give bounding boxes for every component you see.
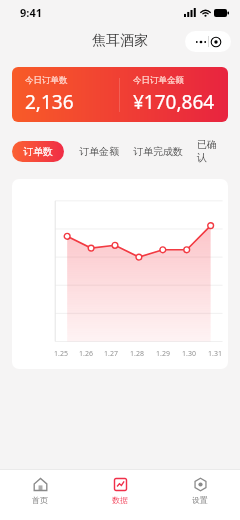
button[interactable]: Mini program menu xyxy=(185,31,231,52)
button[interactable]: 今日订单数 xyxy=(12,67,228,122)
staticText: 首页 xyxy=(32,495,48,505)
button[interactable]: 设置 xyxy=(160,470,240,520)
button[interactable]: 已确认 xyxy=(190,134,228,168)
staticText: 设置 xyxy=(192,495,208,505)
staticText: 2,136 xyxy=(25,89,74,115)
staticText: 1.27 xyxy=(104,349,118,359)
button[interactable]: 订单数 xyxy=(12,141,64,162)
staticText: 订单金额 xyxy=(79,145,119,158)
staticText: 1.30 xyxy=(182,349,196,359)
staticText: 今日订单数 xyxy=(25,75,68,86)
staticText: 订单完成数 xyxy=(133,145,183,158)
button[interactable]: 数据 xyxy=(80,470,160,520)
button[interactable]: 首页 xyxy=(0,470,80,520)
staticText: ¥170,864 xyxy=(133,89,215,115)
staticText: 已确认 xyxy=(197,138,221,164)
staticText: 焦耳酒家 xyxy=(92,32,148,50)
staticText: 1.26 xyxy=(79,349,93,359)
staticText: 1.28 xyxy=(130,349,144,359)
staticText: 订单数 xyxy=(23,145,53,158)
button[interactable]: 订单完成数 xyxy=(126,141,190,162)
staticText: 1.25 xyxy=(54,349,68,359)
staticText: 今日订单金额 xyxy=(133,75,184,86)
staticText: 1.29 xyxy=(156,349,170,359)
staticText: 9:41 xyxy=(20,5,42,20)
button[interactable]: 订单金额 xyxy=(72,141,126,162)
staticText: 1.31 xyxy=(208,349,222,359)
staticText: 数据 xyxy=(112,495,128,505)
